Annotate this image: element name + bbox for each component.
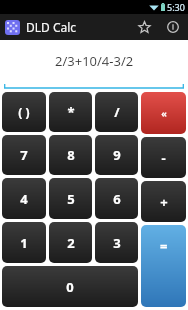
button[interactable]: 9 — [95, 135, 138, 175]
staticText: 7 — [20, 146, 28, 164]
button[interactable]: App icon — [5, 20, 20, 35]
staticText: 6 — [113, 190, 121, 208]
staticText: 5:30 — [167, 1, 185, 13]
button[interactable]: 6 — [95, 178, 138, 219]
button[interactable]: Info — [158, 14, 188, 40]
staticText: = — [160, 237, 168, 255]
staticText: * — [67, 103, 75, 121]
button[interactable]: 5 — [49, 178, 92, 219]
button[interactable]: / — [95, 92, 138, 132]
button[interactable]: Backspace — [141, 92, 186, 134]
staticText: 3 — [113, 234, 121, 252]
button[interactable]: ( ) — [2, 92, 46, 132]
staticText: 2/3+10/4-3/2 — [55, 52, 134, 70]
button[interactable]: * — [49, 92, 92, 132]
staticText: 2 — [67, 234, 75, 252]
staticText: - — [161, 149, 166, 167]
button[interactable]: 2 — [49, 222, 92, 263]
button[interactable]: 8 — [49, 135, 92, 175]
staticText: 8 — [67, 146, 75, 164]
button[interactable]: = — [141, 225, 186, 307]
staticText: 5 — [67, 190, 75, 208]
staticText: « — [161, 107, 167, 119]
staticText: / — [114, 103, 120, 121]
staticText: DLD Calc — [26, 19, 77, 35]
button[interactable]: 3 — [95, 222, 138, 263]
button[interactable]: + — [141, 181, 186, 222]
staticText: 0 — [66, 278, 74, 296]
staticText: ( ) — [18, 104, 30, 120]
button[interactable]: 4 — [2, 178, 46, 219]
button[interactable]: 7 — [2, 135, 46, 175]
button[interactable]: 0 — [2, 266, 138, 307]
button[interactable]: Favorite — [130, 14, 158, 40]
staticText: 9 — [113, 146, 121, 164]
button[interactable]: - — [141, 137, 186, 178]
button[interactable]: 1 — [2, 222, 46, 263]
staticText: 1 — [20, 234, 28, 252]
staticText: 4 — [20, 190, 28, 208]
staticText: + — [160, 193, 168, 211]
